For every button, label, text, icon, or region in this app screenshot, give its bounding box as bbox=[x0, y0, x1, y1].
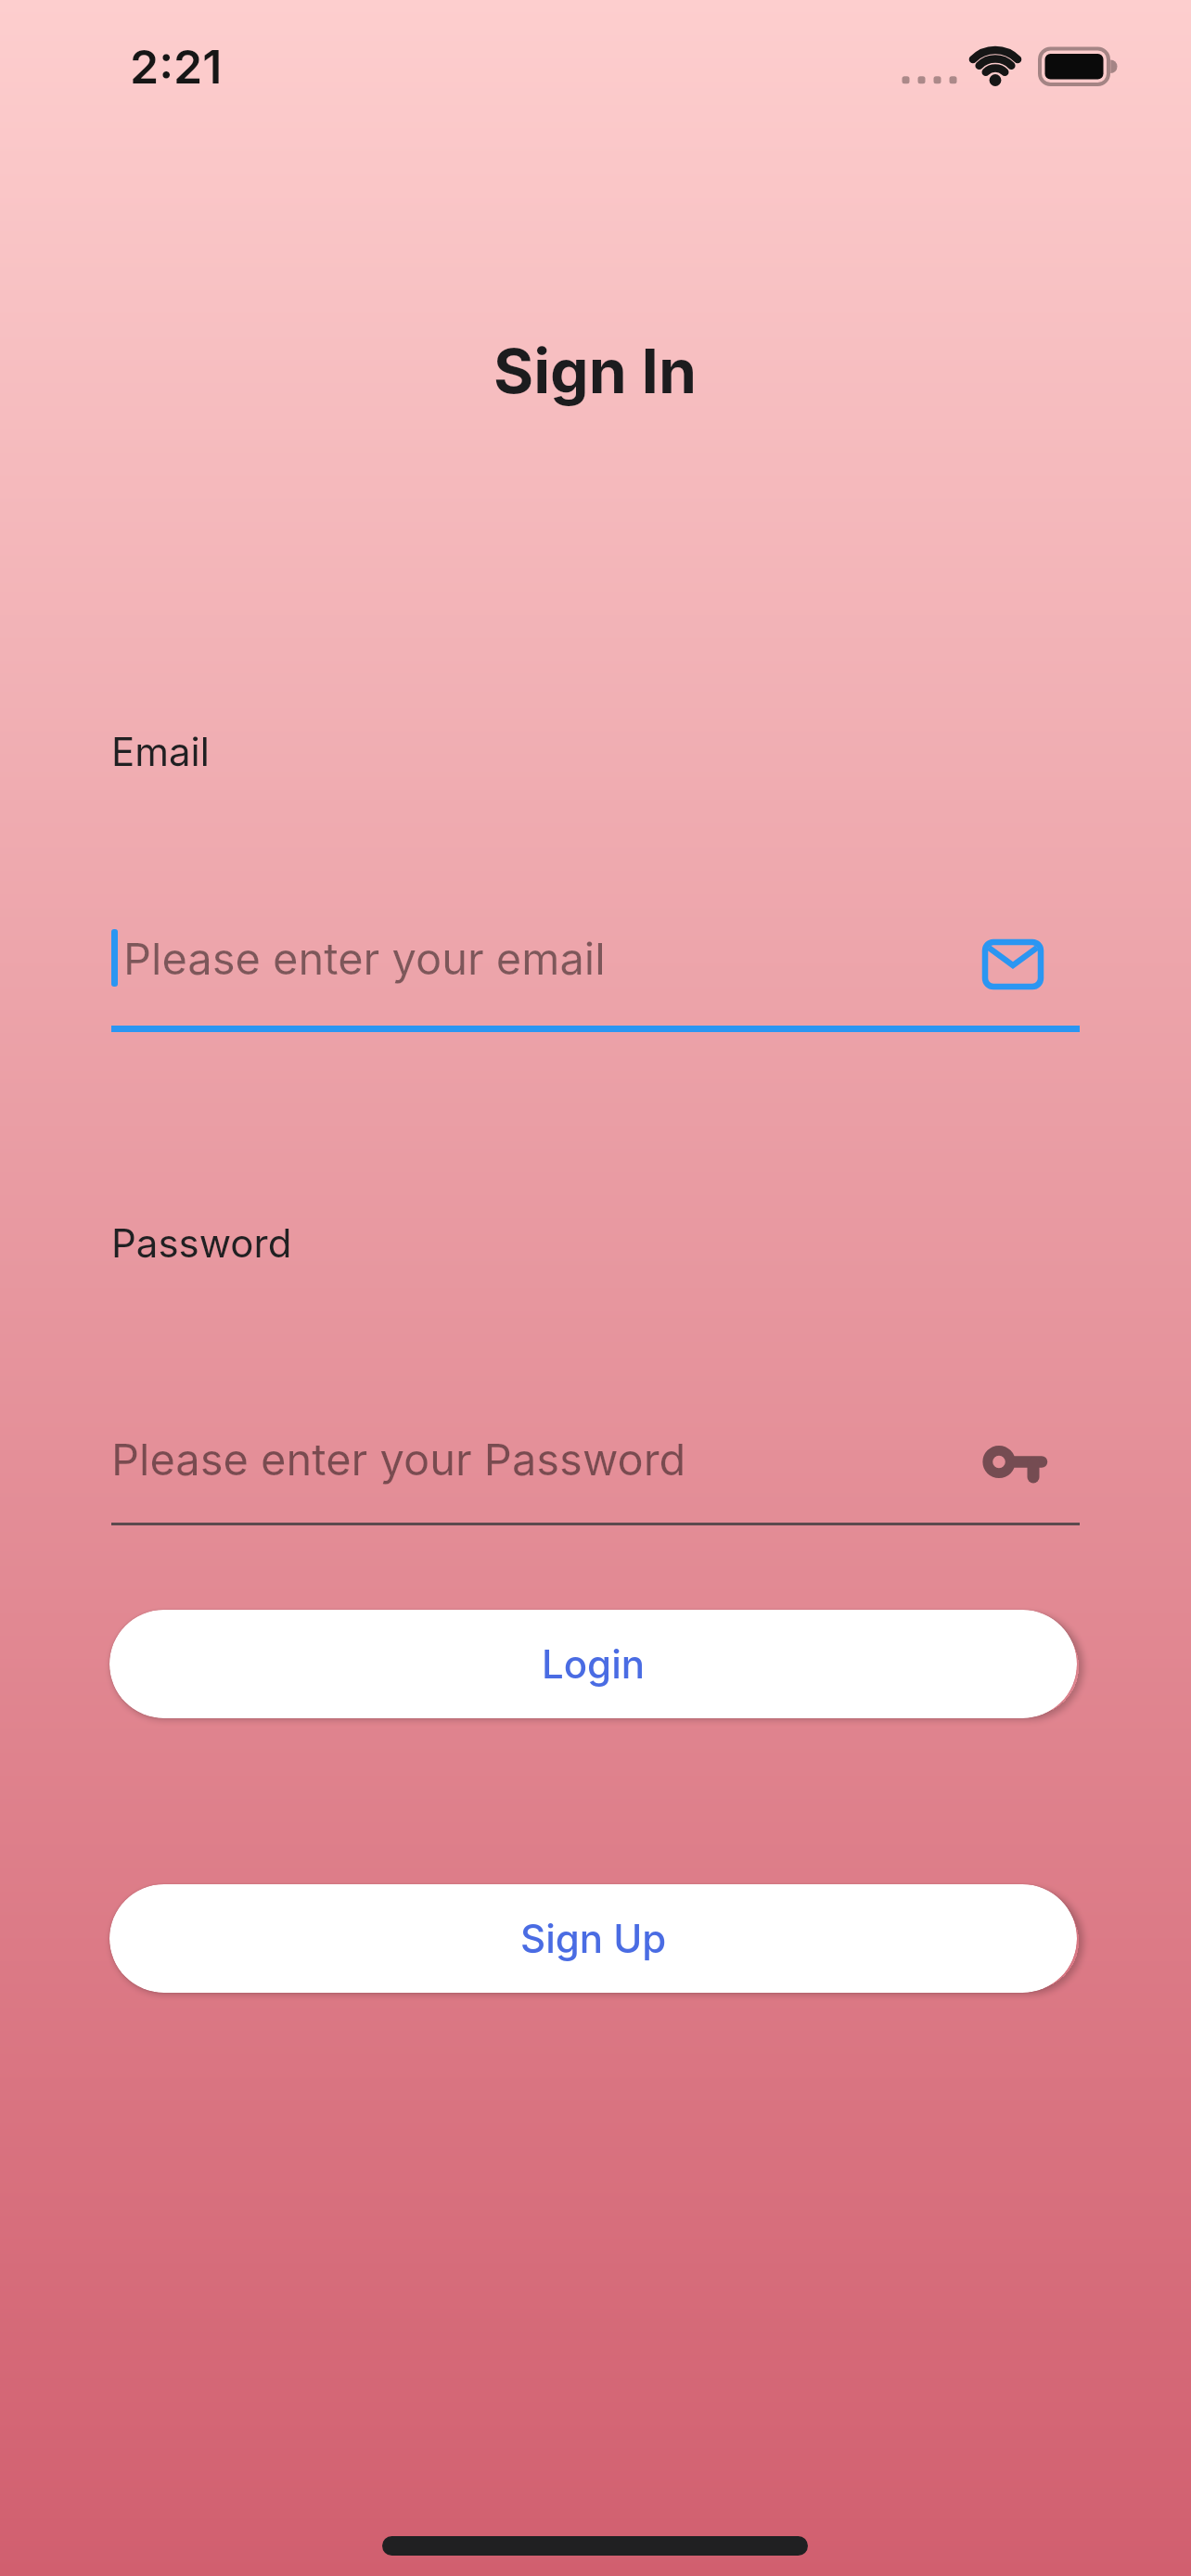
button[interactable]: Sign Up bbox=[109, 1884, 1077, 1993]
staticText: Please enter your Password bbox=[111, 1433, 686, 1486]
staticText: Sign In bbox=[493, 334, 698, 408]
staticText: Password bbox=[111, 1219, 292, 1267]
staticText: Sign Up bbox=[520, 1915, 667, 1962]
button[interactable]: Login bbox=[109, 1610, 1077, 1718]
staticText: 2:21 bbox=[130, 39, 223, 95]
button[interactable]: Please enter your email bbox=[111, 927, 1080, 988]
staticText: Email bbox=[111, 728, 210, 775]
button[interactable]: Please enter your Password bbox=[111, 1428, 1080, 1489]
staticText: Please enter your email bbox=[123, 932, 606, 985]
staticText: Login bbox=[542, 1640, 645, 1688]
